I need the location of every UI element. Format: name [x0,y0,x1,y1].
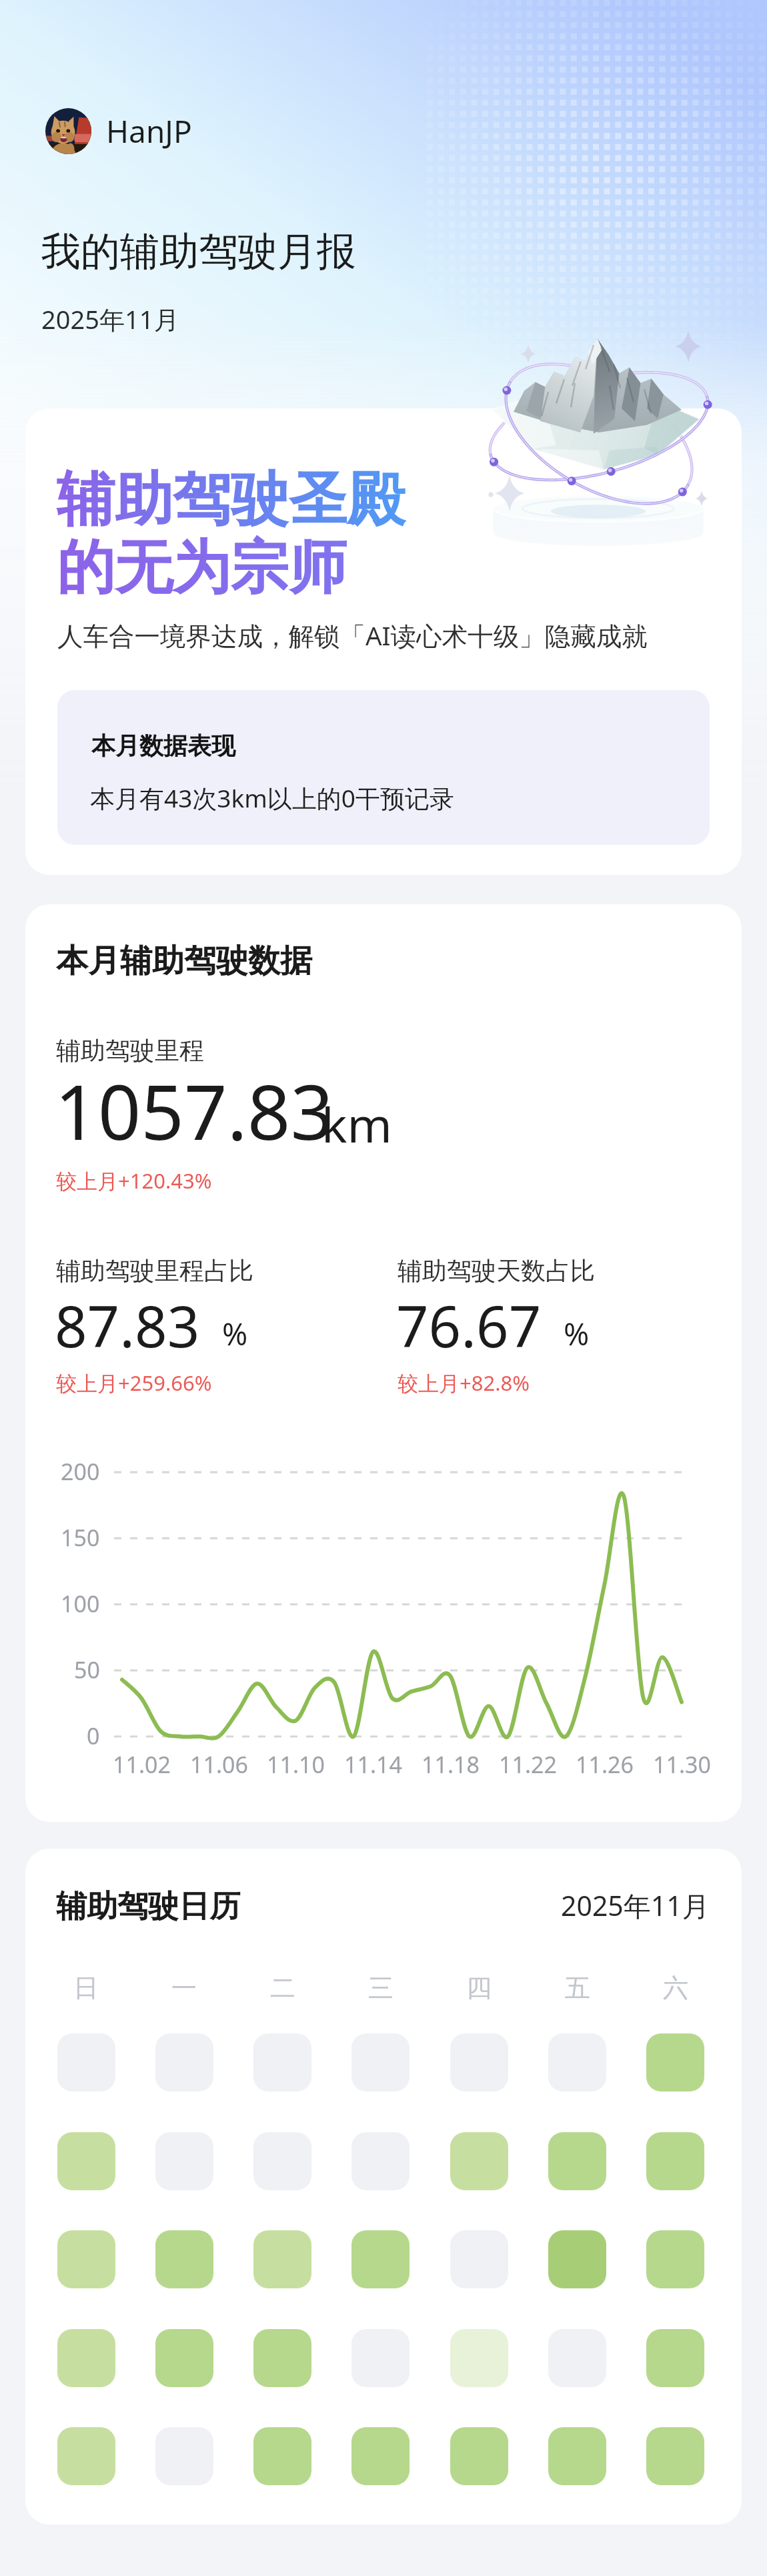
button[interactable] [450,2427,508,2485]
staticText: 本月数据表现 [91,731,235,761]
button[interactable] [646,2329,704,2387]
staticText: 四 [466,1972,492,2004]
button[interactable] [351,2033,410,2091]
button[interactable] [646,2427,704,2485]
staticText: 1057.83 [55,1059,334,1162]
button[interactable] [155,2329,213,2387]
button[interactable] [57,2427,115,2485]
button[interactable]: 辅助驾驶圣殿 [25,408,742,875]
button[interactable] [253,2033,311,2091]
staticText: 五 [565,1972,590,2004]
button[interactable] [646,2132,704,2190]
staticText: 六 [663,1972,688,2004]
staticText: 辅助驾驶里程 [56,1035,204,1066]
button[interactable] [155,2230,213,2288]
button[interactable] [253,2329,311,2387]
staticText: km [321,1091,392,1157]
staticText: 较上月+259.66% [56,1369,212,1397]
staticText: 150 [61,1522,100,1553]
staticText: 辅助驾驶圣殿 [57,463,405,537]
staticText: 2025年11月 [41,302,179,336]
button[interactable] [253,2132,311,2190]
staticText: 11.30 [653,1749,711,1780]
button[interactable] [253,2427,311,2485]
staticText: 11.22 [499,1749,557,1780]
staticText: 辅助驾驶里程占比 [56,1255,253,1287]
button[interactable] [155,2033,213,2091]
staticText: 11.18 [422,1749,480,1780]
staticText: 50 [74,1654,100,1685]
button[interactable] [548,2230,606,2288]
button[interactable] [253,2230,311,2288]
button[interactable] [450,2132,508,2190]
staticText: 11.10 [267,1749,325,1780]
button[interactable] [57,2132,115,2190]
button[interactable]: 辅助驾驶日历 [25,1849,742,2525]
staticText: 11.02 [113,1749,171,1780]
staticText: 76.67 [396,1287,542,1364]
button[interactable] [646,2033,704,2091]
button[interactable]: 本月辅助驾驶数据 [25,904,742,1822]
button[interactable] [57,2033,115,2091]
staticText: 辅助驾驶日历 [56,1887,240,1926]
button[interactable] [351,2132,410,2190]
staticText: 0 [87,1720,100,1751]
button[interactable] [450,2033,508,2091]
button[interactable] [57,2329,115,2387]
staticText: 87.83 [55,1287,200,1364]
button[interactable] [351,2427,410,2485]
staticText: 11.26 [576,1749,634,1780]
staticText: 100 [61,1588,100,1619]
button[interactable] [548,2427,606,2485]
staticText: 一 [171,1972,197,2004]
button[interactable] [155,2427,213,2485]
staticText: 11.06 [190,1749,248,1780]
staticText: 2025年11月 [561,1887,710,1924]
staticText: 的无为宗师 [57,531,347,605]
staticText: 人车合一境界达成，解锁「AI读心术十级」隐藏成就 [57,618,648,653]
staticText: 三 [368,1972,394,2004]
button[interactable] [548,2132,606,2190]
staticText: 日 [73,1972,99,2004]
button[interactable] [450,2230,508,2288]
button[interactable] [548,2329,606,2387]
staticText: 本月有43次3km以上的0干预记录 [90,781,455,815]
button[interactable]: HanJP [45,108,192,154]
button[interactable] [351,2230,410,2288]
button[interactable] [155,2132,213,2190]
button[interactable] [450,2329,508,2387]
staticText: 辅助驾驶天数占比 [398,1255,595,1287]
staticText: 我的辅助驾驶月报 [41,227,356,276]
staticText: % [564,1313,590,1355]
staticText: 200 [61,1456,100,1487]
button[interactable] [351,2329,410,2387]
staticText: 本月辅助驾驶数据 [56,941,312,981]
button[interactable] [548,2033,606,2091]
staticText: 二 [270,1972,295,2004]
staticText: 较上月+120.43% [56,1167,212,1195]
staticText: HanJP [106,110,192,152]
staticText: 较上月+82.8% [398,1369,530,1397]
staticText: 11.14 [344,1749,402,1780]
button[interactable] [57,2230,115,2288]
button[interactable] [646,2230,704,2288]
staticText: % [222,1313,248,1355]
